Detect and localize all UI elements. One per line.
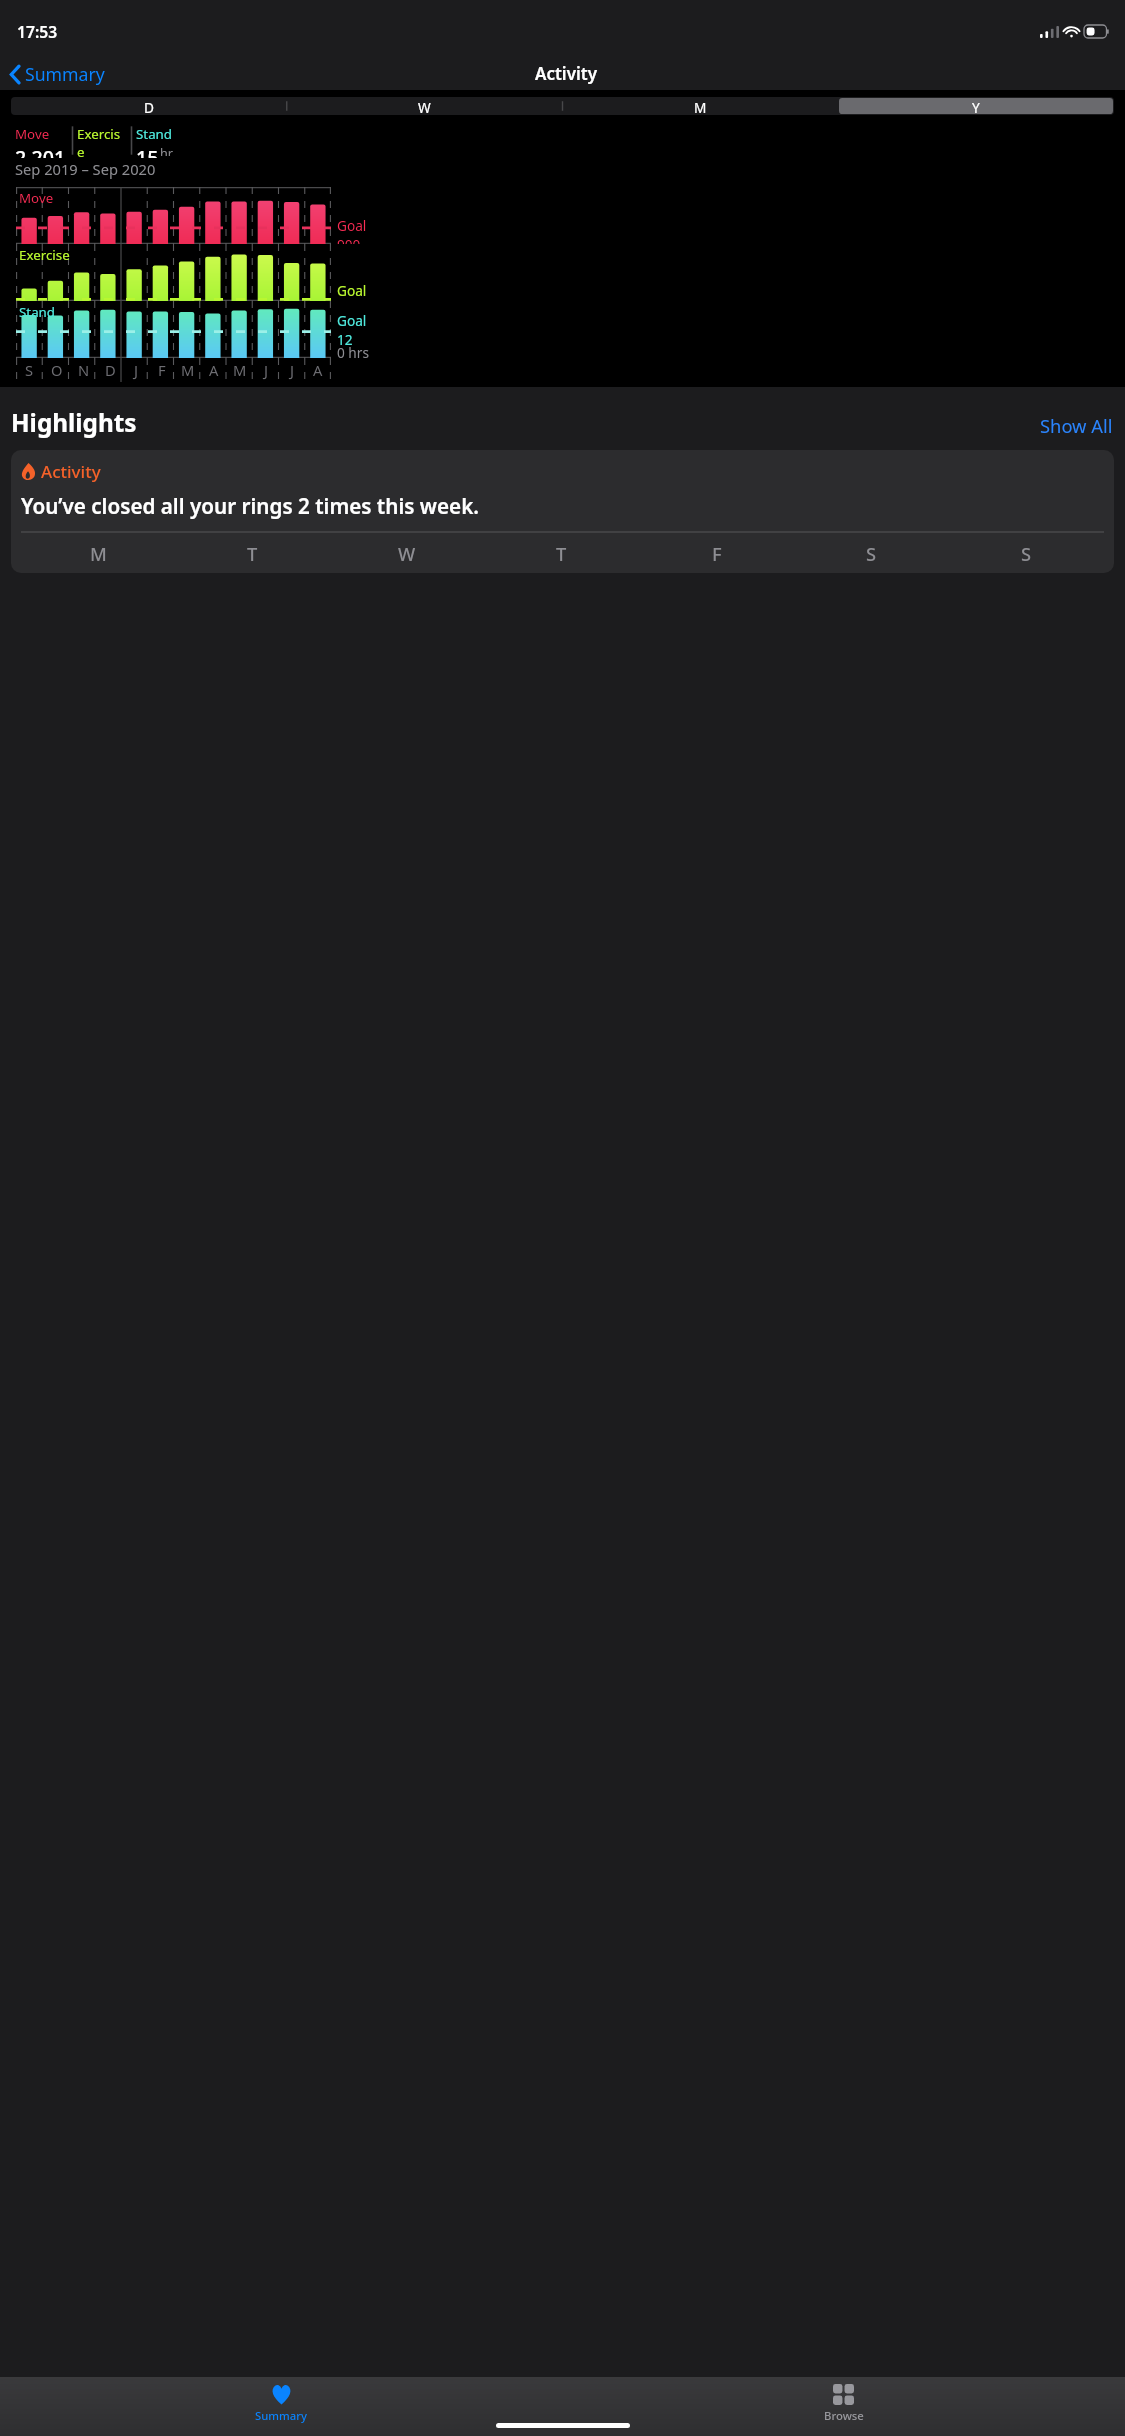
- staticText: J: [134, 360, 139, 380]
- staticText: S: [866, 541, 877, 566]
- button[interactable]: Y: [839, 98, 1113, 114]
- staticText: O: [51, 360, 63, 380]
- staticText: 12: [337, 330, 353, 349]
- button[interactable]: Summary: [0, 2384, 562, 2436]
- staticText: Goal: [337, 311, 367, 330]
- staticText: Summary: [25, 62, 105, 86]
- staticText: A: [313, 360, 323, 380]
- button[interactable]: Activity: [11, 450, 1114, 573]
- staticText: Browse: [824, 2408, 864, 2423]
- staticText: W: [418, 98, 431, 114]
- staticText: Highlights: [11, 406, 137, 439]
- staticText: M: [233, 360, 247, 380]
- staticText: Exercise: [77, 125, 127, 158]
- staticText: Activity: [535, 62, 597, 85]
- staticText: 17:53: [17, 21, 58, 42]
- staticText: J: [290, 360, 295, 380]
- button[interactable]: Browse: [562, 2384, 1125, 2436]
- other: Activity: [21, 463, 36, 481]
- button[interactable]: M: [563, 98, 837, 114]
- staticText: Move: [15, 125, 50, 143]
- staticText: M: [694, 98, 707, 114]
- staticText: You’ve closed all your rings 2 times thi…: [21, 492, 1104, 520]
- staticText: Summary: [255, 2408, 308, 2423]
- staticText: F: [158, 360, 166, 380]
- staticText: Show All: [1040, 413, 1113, 438]
- staticText: M: [181, 360, 195, 380]
- staticText: 900: [337, 235, 361, 244]
- staticText: Goal: [337, 281, 367, 300]
- staticText: S: [1021, 541, 1032, 566]
- staticText: D: [105, 360, 116, 380]
- staticText: Y: [972, 98, 980, 114]
- staticText: W: [398, 541, 416, 566]
- staticText: F: [712, 541, 722, 566]
- staticText: T: [247, 541, 258, 566]
- button[interactable]: Show All: [1039, 412, 1114, 439]
- staticText: Sep 2019 – Sep 2020: [15, 159, 156, 179]
- staticText: 2.201: [15, 144, 66, 158]
- staticText: Stand: [19, 303, 56, 321]
- staticText: Exercise: [19, 246, 70, 264]
- button[interactable]: W: [287, 98, 561, 114]
- staticText: 15: [136, 144, 159, 158]
- staticText: Goal: [337, 216, 367, 235]
- staticText: A: [209, 360, 219, 380]
- staticText: M: [90, 541, 107, 566]
- button[interactable]: D: [12, 98, 285, 114]
- staticText: D: [144, 98, 154, 114]
- staticText: Move: [19, 189, 54, 207]
- staticText: Activity: [41, 460, 101, 483]
- staticText: Stand: [136, 125, 173, 143]
- staticText: T: [556, 541, 567, 566]
- staticText: S: [25, 360, 34, 380]
- staticText: J: [264, 360, 269, 380]
- staticText: N: [78, 360, 90, 380]
- staticText: hr: [160, 144, 174, 156]
- button[interactable]: Summary: [7, 59, 108, 89]
- staticText: 0 hrs: [337, 343, 369, 362]
